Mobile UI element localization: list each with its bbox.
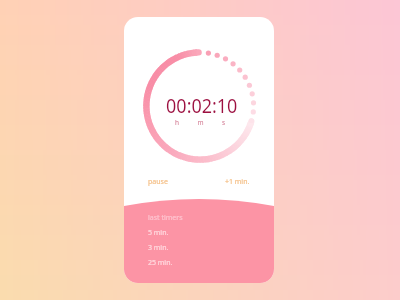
staticText: +1 min.	[225, 177, 250, 187]
button[interactable]: pause	[148, 177, 168, 187]
staticText: s	[212, 118, 235, 127]
button[interactable]: 5 min.	[148, 228, 169, 243]
staticText: h	[165, 118, 189, 127]
button[interactable]: 3 min.	[148, 243, 169, 258]
button[interactable]: +1 min.	[225, 177, 250, 187]
staticText: 00:02:10	[166, 93, 238, 119]
staticText: m	[189, 118, 212, 127]
button[interactable]: 25 min.	[148, 258, 173, 273]
staticText: last timers	[148, 213, 183, 228]
staticText: pause	[148, 177, 168, 187]
